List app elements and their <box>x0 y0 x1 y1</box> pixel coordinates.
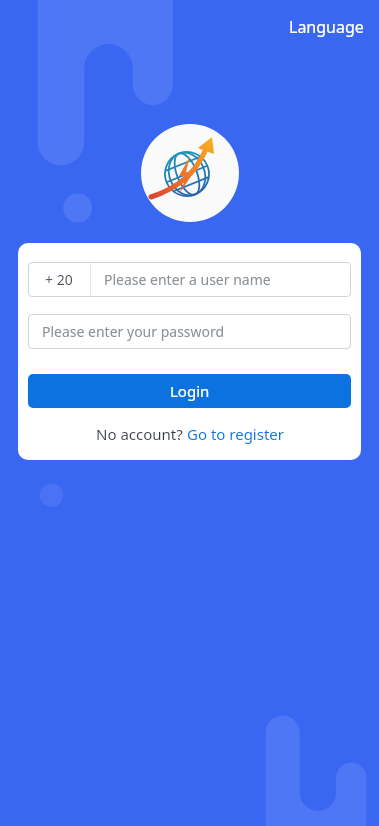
button[interactable]: Login <box>28 374 351 408</box>
staticText: Login <box>170 381 210 401</box>
button[interactable]: Please enter your password <box>28 314 351 349</box>
button[interactable]: + 20 <box>28 262 351 297</box>
staticText: No account? <box>96 424 187 444</box>
button[interactable]: Language <box>283 10 370 44</box>
button[interactable]: Go to register <box>187 424 284 444</box>
staticText: Please enter your password <box>42 322 225 341</box>
staticText: Please enter a user name <box>104 270 271 289</box>
staticText: + 20 <box>45 270 73 289</box>
